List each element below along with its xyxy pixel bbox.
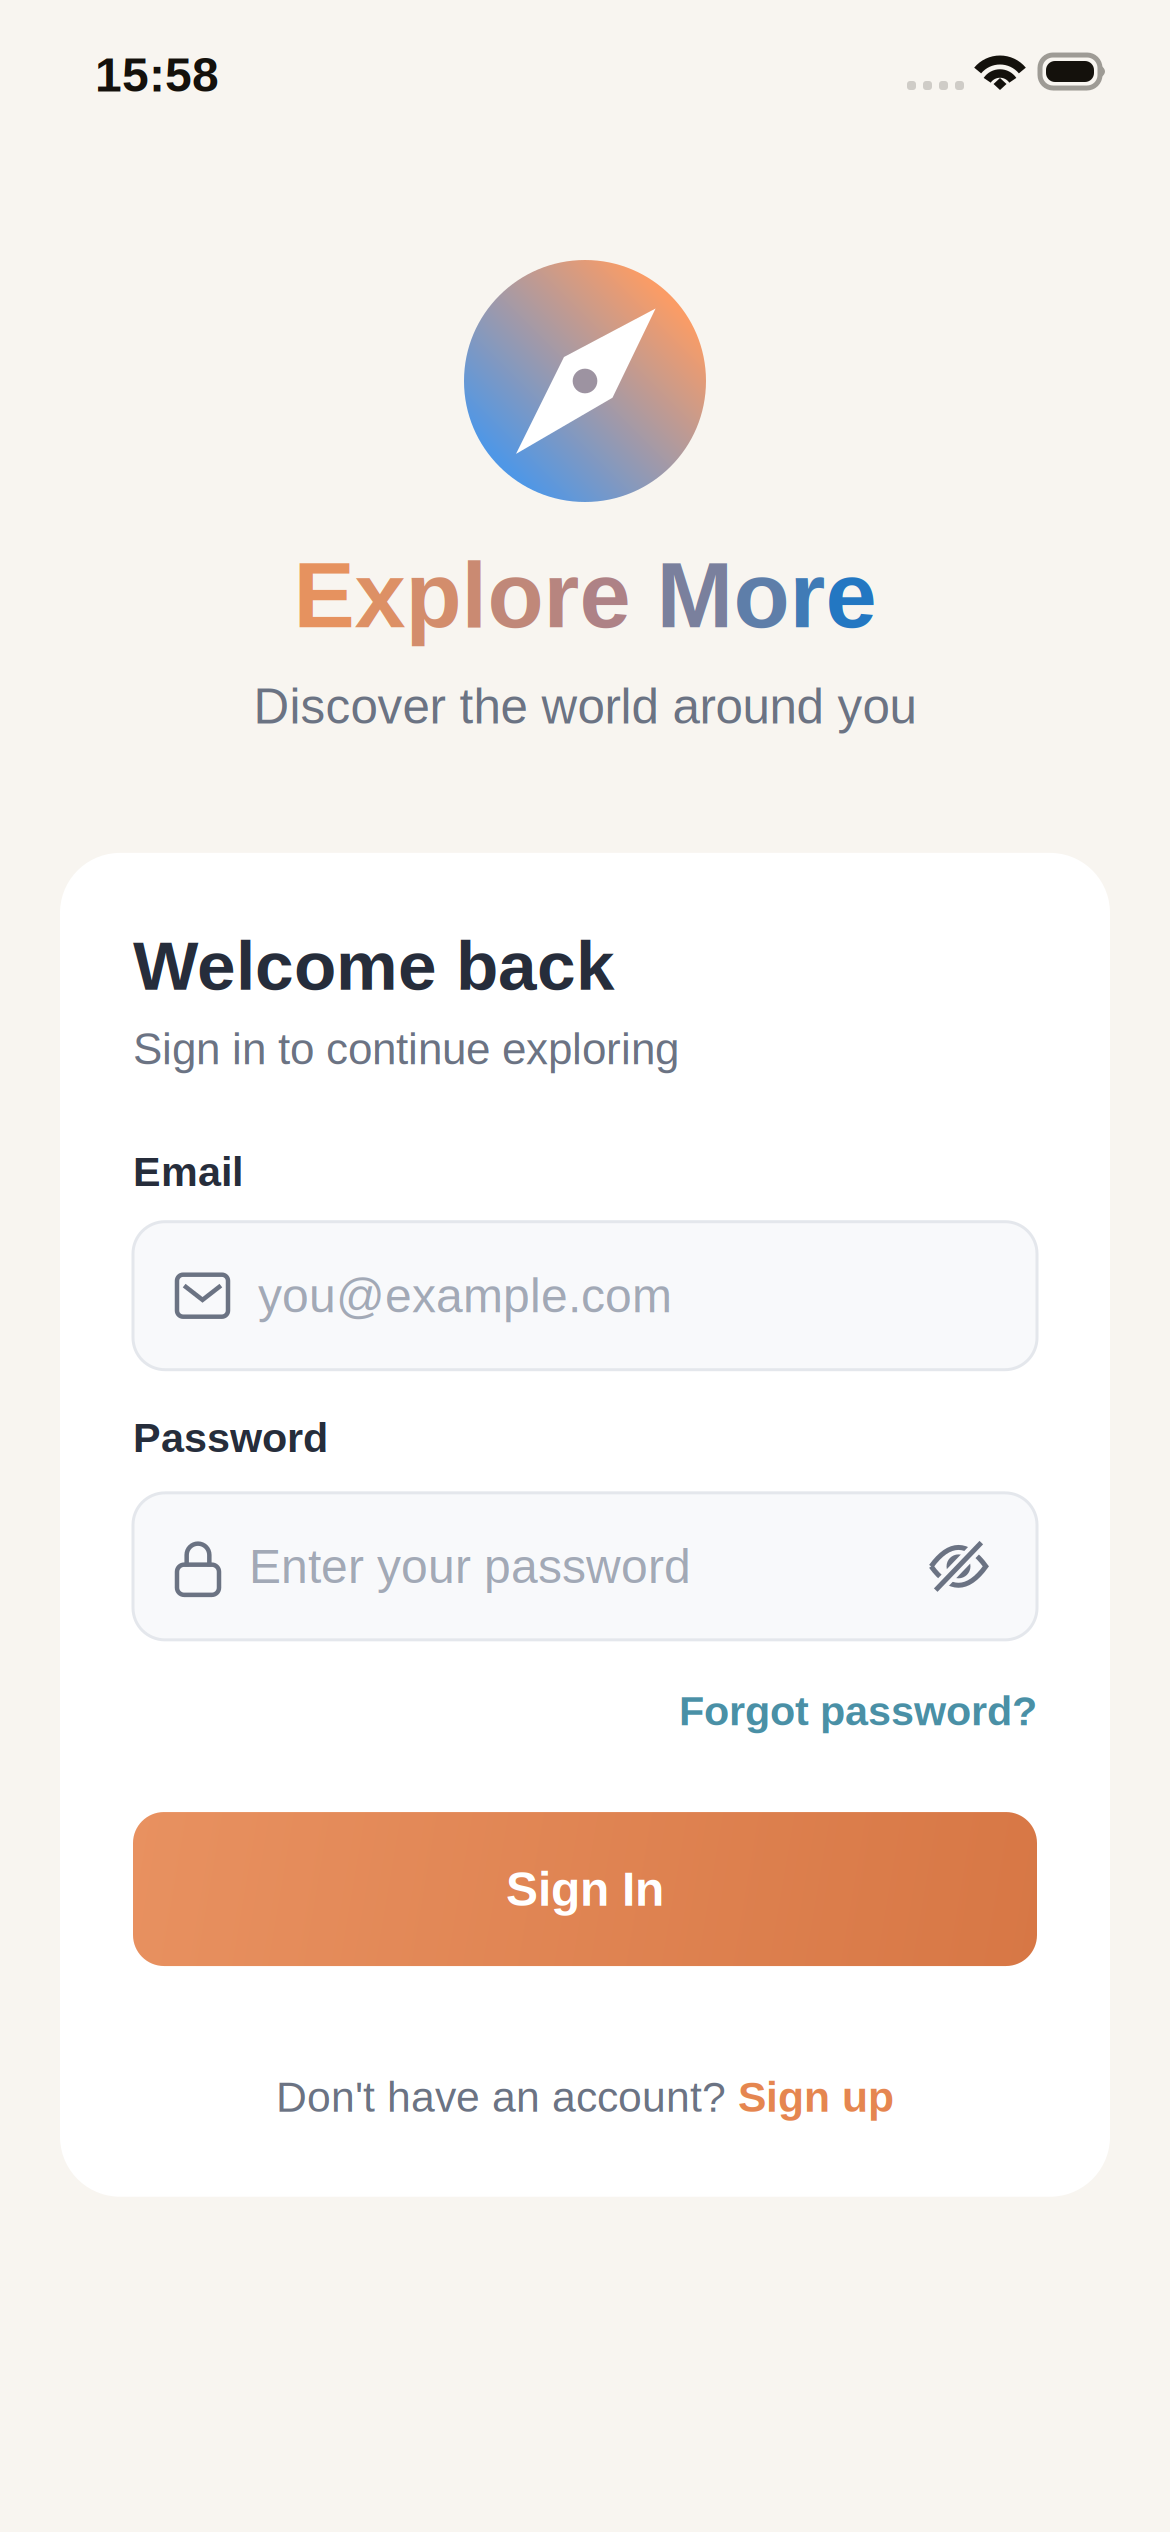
staticText: e [825, 544, 876, 647]
staticText: x [354, 544, 405, 647]
staticText: r [789, 544, 825, 647]
staticText: Sign in to continue exploring [133, 1024, 679, 1074]
staticText: Discover the world around you [253, 679, 916, 734]
staticText: o [733, 544, 789, 647]
button[interactable]: you@example.com [133, 1222, 1037, 1370]
staticText: e [579, 544, 630, 647]
staticText: M [656, 544, 733, 647]
button[interactable]: Enter your password [133, 1493, 1037, 1640]
staticText: 15:58 [95, 48, 219, 102]
button[interactable]: Show password [930, 1544, 987, 1588]
staticText: r [543, 544, 579, 647]
staticText: E [293, 544, 354, 647]
button[interactable]: Sign In [133, 1812, 1037, 1966]
staticText: Sign up [738, 2073, 894, 2121]
staticText: Email [133, 1148, 243, 1195]
button[interactable]: Forgot password? [679, 1688, 1037, 1734]
button[interactable]: Sign up [738, 2073, 894, 2121]
staticText: o [487, 544, 543, 647]
staticText: Forgot password? [679, 1688, 1037, 1734]
staticText: p [405, 544, 461, 647]
staticText: Enter your password [249, 1540, 691, 1593]
staticText: Password [133, 1415, 328, 1461]
staticText: Don't have an account? [276, 2073, 738, 2121]
staticText: you@example.com [258, 1269, 672, 1322]
staticText: Welcome back [133, 927, 615, 1004]
staticText: Sign In [506, 1862, 664, 1916]
staticText: l [461, 544, 487, 647]
